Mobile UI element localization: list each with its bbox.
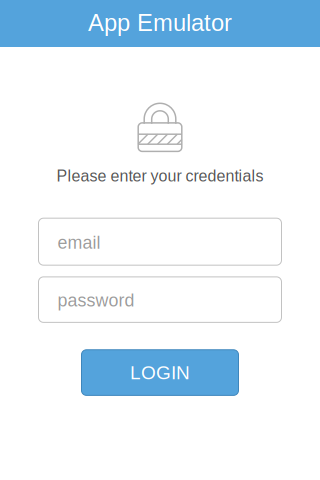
button[interactable]: email	[38, 218, 281, 265]
staticText: password	[57, 290, 134, 310]
staticText: LOGIN	[130, 362, 190, 383]
button[interactable]: LOGIN	[81, 350, 238, 395]
staticText: email	[57, 232, 100, 252]
button[interactable]: password	[38, 277, 281, 322]
staticText: App Emulator	[88, 9, 232, 36]
staticText: Please enter your credentials	[56, 167, 263, 185]
